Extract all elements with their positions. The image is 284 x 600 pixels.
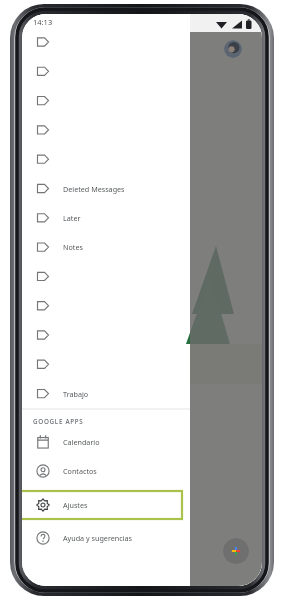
- button[interactable]: Contactos: [22, 457, 190, 485]
- staticText: Ayuda y sugerencias: [63, 533, 133, 543]
- staticText: Trabajo: [63, 389, 89, 399]
- button[interactable]: Calendario: [22, 428, 190, 456]
- button[interactable]: Compose: [223, 538, 249, 564]
- button[interactable]: Notes: [22, 235, 190, 259]
- button[interactable]: Trabajo: [22, 382, 190, 406]
- staticText: Contactos: [63, 466, 97, 476]
- button[interactable]: Later: [22, 206, 190, 230]
- staticText: GOOGLE APPS: [33, 417, 84, 426]
- staticText: Calendario: [63, 437, 100, 447]
- button[interactable]: Account: [224, 40, 242, 58]
- button[interactable]: Deleted Messages: [22, 177, 190, 201]
- staticText: Later: [63, 213, 81, 223]
- staticText: 14:13: [33, 17, 53, 27]
- staticText: Deleted Messages: [63, 184, 125, 194]
- staticText: Ajustes: [63, 500, 88, 510]
- button[interactable]: Ajustes: [22, 488, 190, 516]
- button[interactable]: Ayuda y sugerencias: [22, 524, 190, 552]
- staticText: Notes: [63, 242, 83, 252]
